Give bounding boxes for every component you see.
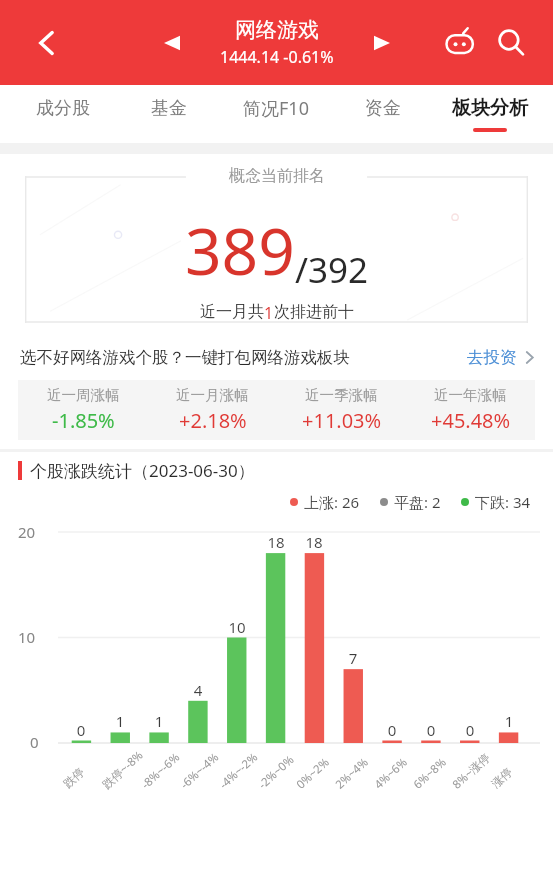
staticText: 简况F10: [243, 96, 309, 121]
staticText: 7: [339, 648, 367, 668]
staticText: 0: [456, 720, 484, 740]
staticText: 去投资: [467, 347, 517, 368]
staticText: -2%~0%: [255, 752, 298, 792]
staticText: 上涨: 26: [304, 492, 360, 512]
staticText: 0%~2%: [293, 754, 333, 792]
staticText: 389: [185, 207, 295, 294]
staticText: 18: [262, 532, 290, 552]
staticText: 1444.14 -0.61%: [220, 46, 334, 68]
staticText: 跌停~-8%: [99, 747, 147, 792]
staticText: 近一月涨幅: [176, 386, 249, 404]
button[interactable]: 基金: [116, 85, 222, 143]
staticText: 4: [184, 680, 212, 700]
staticText: 近一周涨幅: [47, 386, 120, 404]
button[interactable]: 板块分析: [436, 85, 543, 143]
staticText: +11.03%: [302, 407, 382, 434]
staticText: 近一年涨幅: [434, 386, 507, 404]
staticText: 选不好网络游戏个股？一键打包网络游戏板块: [20, 347, 350, 368]
staticText: +45.48%: [431, 407, 511, 434]
staticText: 1: [264, 302, 274, 324]
staticText: -8%~-6%: [138, 749, 183, 792]
staticText: 板块分析: [452, 96, 528, 120]
staticText: 0: [417, 720, 445, 740]
button[interactable]: Previous sector: [154, 25, 190, 61]
staticText: 次排进前十: [274, 302, 354, 322]
button[interactable]: AI assistant: [437, 20, 483, 66]
staticText: 资金: [365, 97, 401, 120]
button[interactable]: 成分股: [10, 85, 116, 143]
button[interactable]: Back: [26, 22, 68, 64]
staticText: 1: [145, 711, 173, 731]
staticText: /392: [295, 246, 369, 294]
staticText: 10: [223, 617, 251, 637]
staticText: -1.85%: [52, 407, 115, 434]
button[interactable]: Next sector: [364, 25, 400, 61]
staticText: 网络游戏: [235, 17, 319, 43]
staticText: 跌停: [60, 765, 87, 791]
staticText: 涨停: [488, 765, 515, 791]
staticText: +2.18%: [179, 407, 247, 434]
staticText: 0: [30, 732, 39, 752]
staticText: -4%~-2%: [216, 749, 261, 792]
button[interactable]: 资金: [329, 85, 436, 143]
staticText: -6%~-4%: [177, 749, 222, 792]
staticText: 基金: [151, 97, 187, 120]
staticText: 近一季涨幅: [305, 386, 378, 404]
staticText: 0: [67, 720, 95, 740]
staticText: 8%~涨停: [449, 750, 494, 792]
staticText: 平盘: 2: [394, 492, 441, 512]
staticText: 1: [106, 711, 134, 731]
staticText: 下跌: 34: [475, 492, 531, 512]
staticText: 2%~4%: [332, 754, 372, 792]
staticText: 近一月共: [200, 302, 264, 322]
button[interactable]: Search: [488, 20, 534, 66]
staticText: 0: [378, 720, 406, 740]
button[interactable]: 简况F10: [222, 85, 329, 143]
staticText: 10: [18, 627, 36, 647]
staticText: 6%~8%: [410, 754, 450, 792]
staticText: 20: [18, 522, 36, 542]
staticText: 成分股: [36, 97, 90, 120]
staticText: 个股涨跌统计（2023-06-30）: [30, 459, 255, 482]
staticText: 18: [300, 532, 328, 552]
staticText: 1: [495, 711, 523, 731]
staticText: 概念当前排名: [229, 166, 325, 186]
button[interactable]: 选不好网络游戏个股？一键打包网络游戏板块: [0, 334, 553, 380]
staticText: 4%~6%: [371, 754, 411, 792]
